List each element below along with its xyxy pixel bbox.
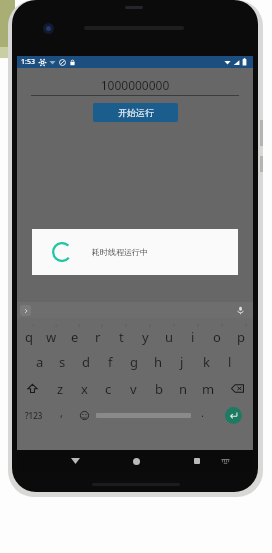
- button[interactable]: ?123: [17, 402, 50, 428]
- staticText: 3: [78, 323, 81, 328]
- staticText: 开始运行: [118, 107, 154, 118]
- staticText: h: [154, 353, 163, 371]
- staticText: k: [203, 353, 210, 371]
- staticText: c: [105, 380, 112, 398]
- button[interactable]: a: [28, 348, 51, 375]
- button[interactable]: n: [171, 375, 196, 402]
- staticText: 7: [173, 323, 176, 328]
- button[interactable]: x: [72, 375, 96, 402]
- button[interactable]: Backspace: [221, 375, 253, 402]
- button[interactable]: h: [146, 348, 170, 375]
- staticText: m: [202, 380, 215, 398]
- staticText: x: [81, 380, 88, 398]
- staticText: 6: [149, 323, 152, 328]
- staticText: y: [142, 328, 149, 346]
- button[interactable]: 0: [229, 321, 253, 348]
- staticText: 5: [125, 323, 128, 328]
- staticText: d: [82, 353, 90, 371]
- button[interactable]: 1000000000: [31, 77, 239, 96]
- staticText: e: [71, 328, 79, 346]
- staticText: p: [237, 328, 245, 346]
- button[interactable]: Switch keyboard: [211, 450, 239, 472]
- staticText: v: [130, 380, 137, 398]
- button[interactable]: Space: [96, 410, 191, 420]
- button[interactable]: f: [98, 348, 122, 375]
- button[interactable]: 3: [63, 321, 86, 348]
- staticText: z: [57, 380, 64, 398]
- button[interactable]: Shift: [17, 375, 48, 402]
- button[interactable]: j: [170, 348, 194, 375]
- staticText: 1:53: [21, 57, 35, 67]
- button[interactable]: d: [74, 348, 98, 375]
- button[interactable]: z: [48, 375, 72, 402]
- staticText: ?123: [25, 410, 43, 421]
- button[interactable]: Home: [122, 450, 150, 472]
- staticText: l: [228, 353, 232, 371]
- button[interactable]: 5: [109, 321, 133, 348]
- staticText: f: [108, 353, 113, 371]
- staticText: .: [201, 405, 204, 420]
- button[interactable]: 8: [181, 321, 205, 348]
- staticText: r: [95, 328, 101, 346]
- staticText: 8: [197, 323, 200, 328]
- staticText: g: [130, 353, 138, 371]
- staticText: i: [191, 328, 195, 346]
- button[interactable]: 9: [205, 321, 229, 348]
- staticText: j: [180, 353, 184, 371]
- button[interactable]: 1: [17, 321, 40, 348]
- button[interactable]: ,: [50, 402, 73, 428]
- staticText: o: [213, 328, 221, 346]
- staticText: 9: [221, 323, 224, 328]
- staticText: n: [179, 380, 188, 398]
- staticText: u: [165, 328, 174, 346]
- staticText: 耗时线程运行中: [92, 247, 148, 257]
- button[interactable]: g: [122, 348, 146, 375]
- staticText: w: [46, 328, 57, 346]
- button[interactable]: Recent apps: [183, 450, 211, 472]
- button[interactable]: b: [146, 375, 171, 402]
- button[interactable]: 6: [133, 321, 157, 348]
- button[interactable]: Enter: [225, 407, 242, 424]
- staticText: q: [25, 328, 33, 346]
- button[interactable]: c: [96, 375, 121, 402]
- staticText: ,: [60, 405, 63, 420]
- staticText: t: [119, 328, 124, 346]
- button[interactable]: k: [194, 348, 218, 375]
- button[interactable]: Emoji: [73, 402, 96, 428]
- button[interactable]: v: [121, 375, 146, 402]
- button[interactable]: Voice input: [235, 305, 246, 316]
- button[interactable]: Back: [61, 450, 89, 472]
- button[interactable]: 7: [157, 321, 181, 348]
- staticText: a: [36, 353, 44, 371]
- button[interactable]: 4: [86, 321, 109, 348]
- button[interactable]: m: [196, 375, 221, 402]
- button[interactable]: l: [218, 348, 242, 375]
- staticText: 1000000000: [31, 77, 239, 93]
- staticText: 2: [55, 323, 58, 328]
- staticText: s: [59, 353, 66, 371]
- staticText: 4: [101, 323, 104, 328]
- button[interactable]: 开始运行: [93, 103, 178, 122]
- staticText: b: [155, 380, 163, 398]
- button[interactable]: 2: [40, 321, 63, 348]
- button[interactable]: s: [51, 348, 74, 375]
- button[interactable]: Expand suggestions: [20, 305, 31, 316]
